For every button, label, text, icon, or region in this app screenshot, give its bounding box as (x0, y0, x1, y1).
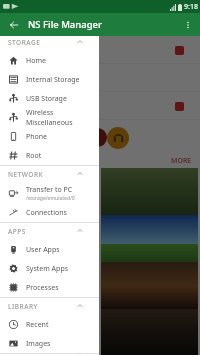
button[interactable]: Recent (0, 315, 99, 334)
staticText: 9:18 (184, 2, 198, 12)
button[interactable] (0, 92, 200, 120)
staticText: APPS (8, 227, 26, 236)
button[interactable]: Connections (0, 203, 99, 222)
button[interactable]: Back (5, 16, 22, 33)
button[interactable]: NETWORK (0, 165, 99, 183)
staticText: Phone (26, 132, 48, 142)
button[interactable] (101, 262, 198, 309)
button[interactable] (101, 309, 198, 355)
button[interactable]: FOLDERS (0, 353, 99, 355)
staticText: Wireless Miscellaneous (26, 108, 99, 127)
button[interactable]: System Apps (0, 259, 99, 278)
staticText: Transfer to PC (26, 185, 73, 195)
staticText: NS File Manager (28, 18, 103, 31)
button[interactable]: APPS (0, 222, 99, 240)
button[interactable] (0, 36, 200, 64)
staticText: /storage/emulated/0 (26, 195, 75, 202)
button[interactable]: Home (0, 51, 99, 70)
button[interactable]: Transfer to PC (0, 183, 99, 203)
button[interactable] (2, 262, 99, 309)
button[interactable]: Processes (0, 278, 99, 297)
button[interactable]: Record (88, 128, 107, 147)
button[interactable] (101, 168, 198, 215)
button[interactable]: USB Storage (0, 89, 99, 108)
button[interactable]: Internal Storage (0, 70, 99, 89)
staticText: Images (26, 339, 51, 349)
button[interactable]: MORE (171, 156, 192, 166)
button[interactable] (2, 168, 99, 215)
staticText: User Apps (26, 245, 60, 255)
button[interactable]: Root (0, 146, 99, 165)
staticText: Root (26, 151, 42, 161)
staticText: NETWORK (8, 170, 44, 179)
staticText: Processes (26, 283, 59, 293)
button[interactable]: STORAGE (0, 33, 99, 51)
button[interactable]: Wireless Miscellaneous (0, 108, 99, 127)
button[interactable]: LIBRARY (0, 297, 99, 315)
staticText: STORAGE (8, 38, 41, 47)
staticText: Internal Storage (26, 75, 80, 85)
staticText: LIBRARY (8, 302, 38, 311)
button[interactable] (2, 309, 99, 355)
button[interactable] (0, 64, 200, 92)
button[interactable] (2, 215, 99, 262)
staticText: FOLDERS (8, 353, 40, 355)
button[interactable]: More options (179, 16, 196, 33)
staticText: Home (26, 56, 46, 66)
button[interactable] (101, 215, 198, 262)
staticText: Connections (26, 208, 67, 218)
button[interactable]: User Apps (0, 240, 99, 259)
staticText: USB Storage (26, 94, 67, 104)
button[interactable]: Headphones (107, 127, 129, 149)
button[interactable]: Phone (0, 127, 99, 146)
staticText: System Apps (26, 264, 69, 274)
staticText: Recent (26, 320, 49, 330)
button[interactable]: Images (0, 334, 99, 353)
